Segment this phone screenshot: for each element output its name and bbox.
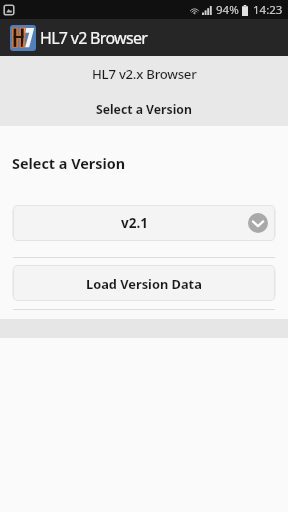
other: Screenshot notification <box>4 5 14 15</box>
staticText: HL7 v2 Browser <box>40 27 148 49</box>
button[interactable]: Load Version Data <box>13 265 275 301</box>
button[interactable]: v2.1 <box>13 205 275 241</box>
staticText: Load Version Data <box>86 275 202 292</box>
staticText: 94% <box>216 2 239 18</box>
staticText: HL7 v2.x Browser <box>92 65 197 83</box>
staticText: v2.1 <box>121 214 148 232</box>
staticText: Select a Version <box>12 154 126 174</box>
staticText: 14:23 <box>253 2 283 18</box>
other: Expand version list <box>248 213 268 233</box>
staticText: Select a Version <box>96 101 192 118</box>
